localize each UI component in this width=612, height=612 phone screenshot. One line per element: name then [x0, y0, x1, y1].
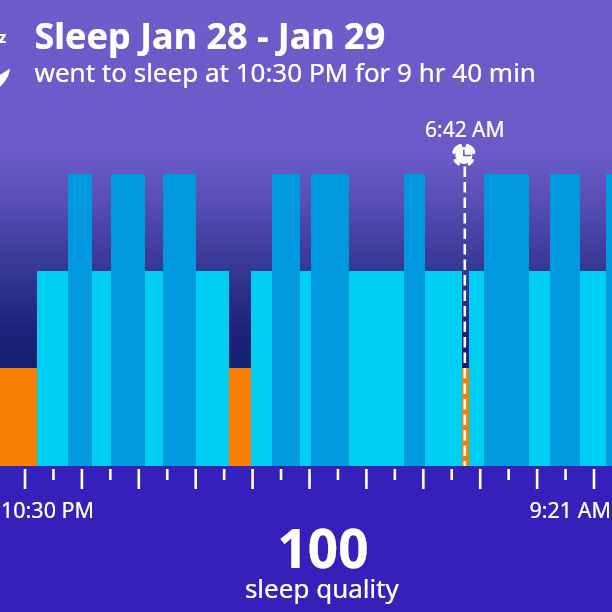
button[interactable]: Sleep graph for Jan 28 - Jan 29 — [0, 0, 612, 612]
